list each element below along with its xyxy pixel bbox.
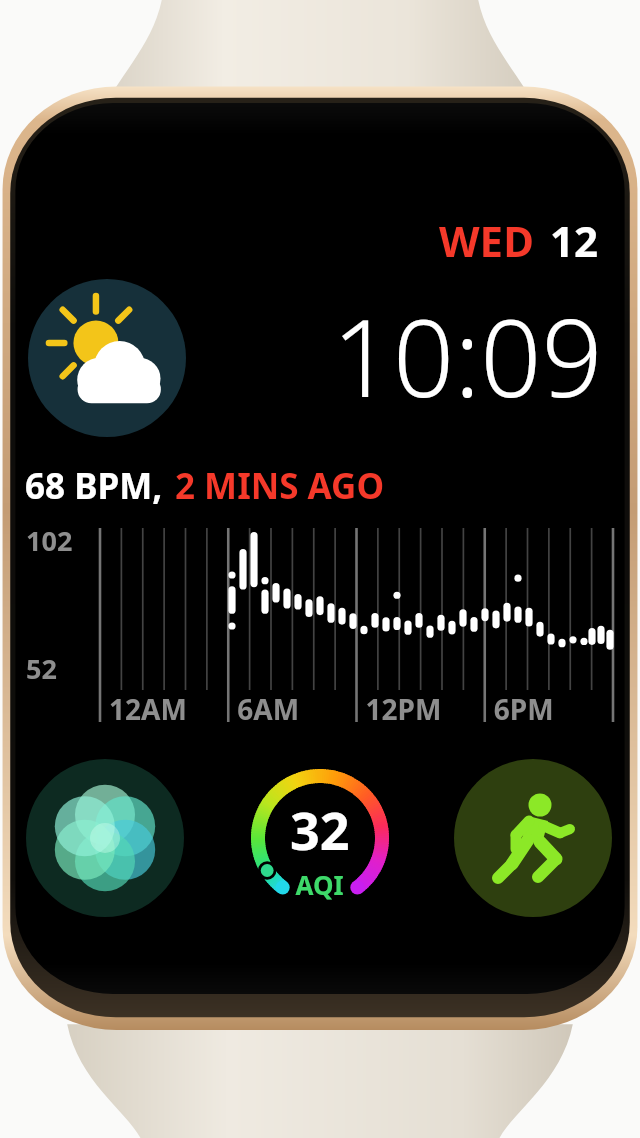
- button[interactable]: Time 10:09: [230, 282, 605, 418]
- button[interactable]: Breathe: [26, 759, 184, 917]
- button[interactable]: Air Quality Index 32: [241, 759, 399, 917]
- button[interactable]: Workout: [454, 759, 612, 917]
- button[interactable]: Weather, partly cloudy: [29, 279, 185, 437]
- button[interactable]: Heart rate, 68 BPM, 2 mins ago: [22, 455, 612, 717]
